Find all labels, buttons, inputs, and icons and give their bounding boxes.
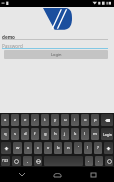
- staticText: d: [24, 131, 27, 137]
- button[interactable]: ?123: [1, 156, 10, 166]
- staticText: i: [74, 117, 76, 123]
- staticText: a: [4, 117, 7, 123]
- staticText: e: [24, 117, 27, 123]
- staticText: l: [84, 131, 86, 137]
- staticText: n: [67, 145, 70, 151]
- staticText: g: [44, 131, 47, 137]
- button[interactable]: .: [85, 156, 93, 166]
- button[interactable]: Back: [8, 167, 36, 182]
- button[interactable]: n: [64, 142, 72, 154]
- button[interactable]: t: [41, 114, 49, 126]
- staticText: !: [87, 145, 89, 151]
- button[interactable]: r: [31, 114, 39, 126]
- button[interactable]: c: [34, 142, 42, 154]
- staticText: Password: [2, 43, 23, 49]
- staticText: ,: [27, 158, 29, 164]
- staticText: ': [78, 145, 79, 151]
- button[interactable]: g: [41, 128, 49, 140]
- button[interactable]: s: [11, 128, 19, 140]
- staticText: demo: [2, 34, 15, 40]
- button[interactable]: z: [11, 114, 19, 126]
- button[interactable]: !: [84, 142, 92, 154]
- button[interactable]: i: [71, 114, 79, 126]
- staticText: f: [34, 131, 36, 137]
- button[interactable]: Home: [43, 167, 71, 182]
- staticText: x: [27, 145, 30, 151]
- button[interactable]: Space: [44, 156, 83, 166]
- button[interactable]: x: [24, 142, 32, 154]
- staticText: v: [47, 145, 50, 151]
- staticText: o: [84, 117, 87, 123]
- button[interactable]: y: [51, 114, 59, 126]
- staticText: .: [88, 158, 90, 164]
- button[interactable]: f: [31, 128, 39, 140]
- button[interactable]: Key: [1, 142, 11, 154]
- button[interactable]: Recents: [79, 167, 107, 182]
- button[interactable]: Key: [101, 114, 113, 126]
- staticText: c: [37, 145, 40, 151]
- staticText: q: [4, 131, 7, 137]
- staticText: w: [16, 145, 20, 151]
- staticText: r: [34, 117, 36, 123]
- staticText: j: [64, 131, 66, 137]
- button[interactable]: o: [81, 114, 89, 126]
- button[interactable]: q: [1, 128, 9, 140]
- staticText: b: [57, 145, 60, 151]
- staticText: ?: [97, 145, 99, 151]
- staticText: .: [98, 158, 100, 164]
- staticText: y: [54, 117, 57, 123]
- button[interactable]: a: [1, 114, 9, 126]
- button[interactable]: Login: [4, 50, 108, 59]
- button[interactable]: Key: [12, 156, 21, 166]
- button[interactable]: Key: [105, 156, 113, 166]
- staticText: m: [93, 131, 97, 137]
- staticText: u: [64, 117, 67, 123]
- button[interactable]: p: [91, 114, 99, 126]
- staticText: t: [44, 117, 46, 123]
- button[interactable]: k: [71, 128, 79, 140]
- staticText: k: [74, 131, 77, 137]
- staticText: h: [54, 131, 57, 137]
- button[interactable]: w: [13, 142, 22, 154]
- button[interactable]: b: [54, 142, 62, 154]
- staticText: Login: [103, 132, 112, 137]
- button[interactable]: ,: [23, 156, 32, 166]
- button[interactable]: Key: [34, 156, 42, 166]
- button[interactable]: j: [61, 128, 69, 140]
- button[interactable]: m: [91, 128, 99, 140]
- button[interactable]: v: [44, 142, 52, 154]
- button[interactable]: ?: [94, 142, 102, 154]
- staticText: p: [94, 117, 97, 123]
- staticText: s: [14, 131, 17, 137]
- button[interactable]: Login: [101, 128, 113, 140]
- button[interactable]: ': [74, 142, 82, 154]
- staticText: ?123: [2, 159, 9, 163]
- button[interactable]: d: [21, 128, 29, 140]
- button[interactable]: u: [61, 114, 69, 126]
- button[interactable]: .: [95, 156, 103, 166]
- button[interactable]: e: [21, 114, 29, 126]
- button[interactable]: h: [51, 128, 59, 140]
- staticText: Login: [51, 52, 62, 57]
- staticText: z: [14, 117, 16, 123]
- button[interactable]: Key: [104, 142, 113, 154]
- button[interactable]: l: [81, 128, 89, 140]
